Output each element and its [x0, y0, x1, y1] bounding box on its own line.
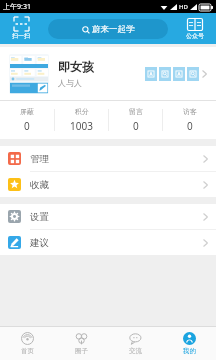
button[interactable]: 建议 [0, 230, 216, 255]
button[interactable]: 我的 [162, 327, 216, 360]
button[interactable]: 收藏 [0, 172, 216, 197]
button[interactable]: 扫一扫 Scan [4, 17, 38, 40]
staticText: 我的 [183, 347, 196, 355]
button[interactable]: 圈子 [54, 327, 108, 360]
button[interactable]: Badge [145, 67, 157, 81]
staticText: 圈子 [75, 347, 88, 355]
staticText: 即女孩 [58, 59, 94, 74]
button[interactable]: Badge [159, 67, 171, 81]
button[interactable]: 管理 [0, 146, 216, 171]
button[interactable]: 设置 [0, 204, 216, 229]
staticText: 留言 [129, 107, 143, 116]
staticText: 设置 [30, 211, 49, 223]
staticText: 0 [133, 119, 139, 133]
staticText: 交流 [129, 347, 142, 355]
button[interactable]: 蔚来一起学 [48, 19, 168, 39]
staticText: 收藏 [30, 179, 49, 191]
staticText: 扫一扫 [12, 32, 30, 40]
staticText: 人与人 [58, 78, 82, 88]
button[interactable]: 积分 [55, 101, 108, 139]
staticText: 蔚来一起学 [92, 24, 135, 35]
button[interactable]: 首页 [0, 327, 54, 360]
button[interactable]: 交流 [108, 327, 162, 360]
staticText: 建议 [30, 237, 49, 249]
button[interactable]: 访客 [163, 101, 216, 139]
staticText: 0 [187, 119, 193, 133]
staticText: HD [179, 3, 188, 11]
button[interactable]: Avatar [9, 54, 49, 94]
staticText: 管理 [30, 153, 49, 165]
staticText: 0 [24, 119, 30, 133]
staticText: 上午9:31 [3, 2, 31, 12]
button[interactable]: Badge [173, 67, 185, 81]
staticText: 访客 [183, 107, 197, 116]
button[interactable]: 屏蔽 [0, 101, 54, 139]
staticText: 积分 [75, 107, 89, 116]
button[interactable]: 公众号 Public account [178, 18, 212, 40]
staticText: 公众号 [186, 32, 204, 40]
button[interactable]: Badge [187, 67, 199, 81]
button[interactable]: Avatar [0, 47, 216, 100]
button[interactable]: 留言 [109, 101, 162, 139]
staticText: 首页 [21, 347, 34, 355]
staticText: 1003 [70, 119, 93, 133]
staticText: 屏蔽 [20, 107, 34, 116]
